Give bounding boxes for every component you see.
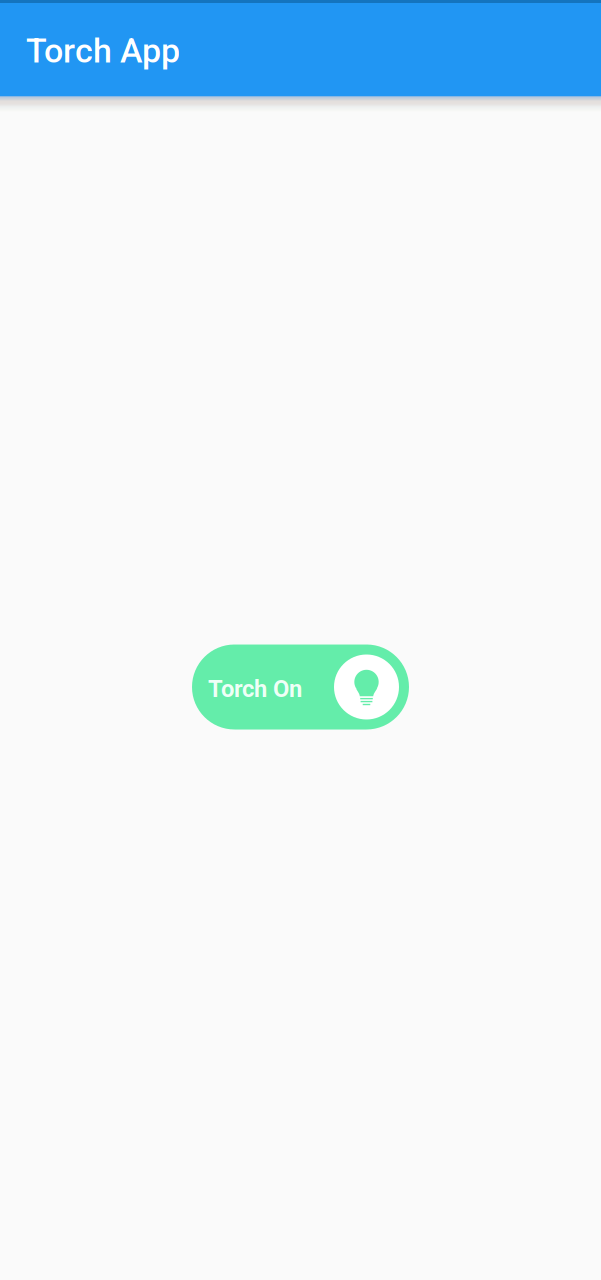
button[interactable]: Torch On — [192, 644, 409, 729]
staticText: Torch On — [208, 675, 302, 703]
staticText: Torch App — [26, 31, 180, 71]
